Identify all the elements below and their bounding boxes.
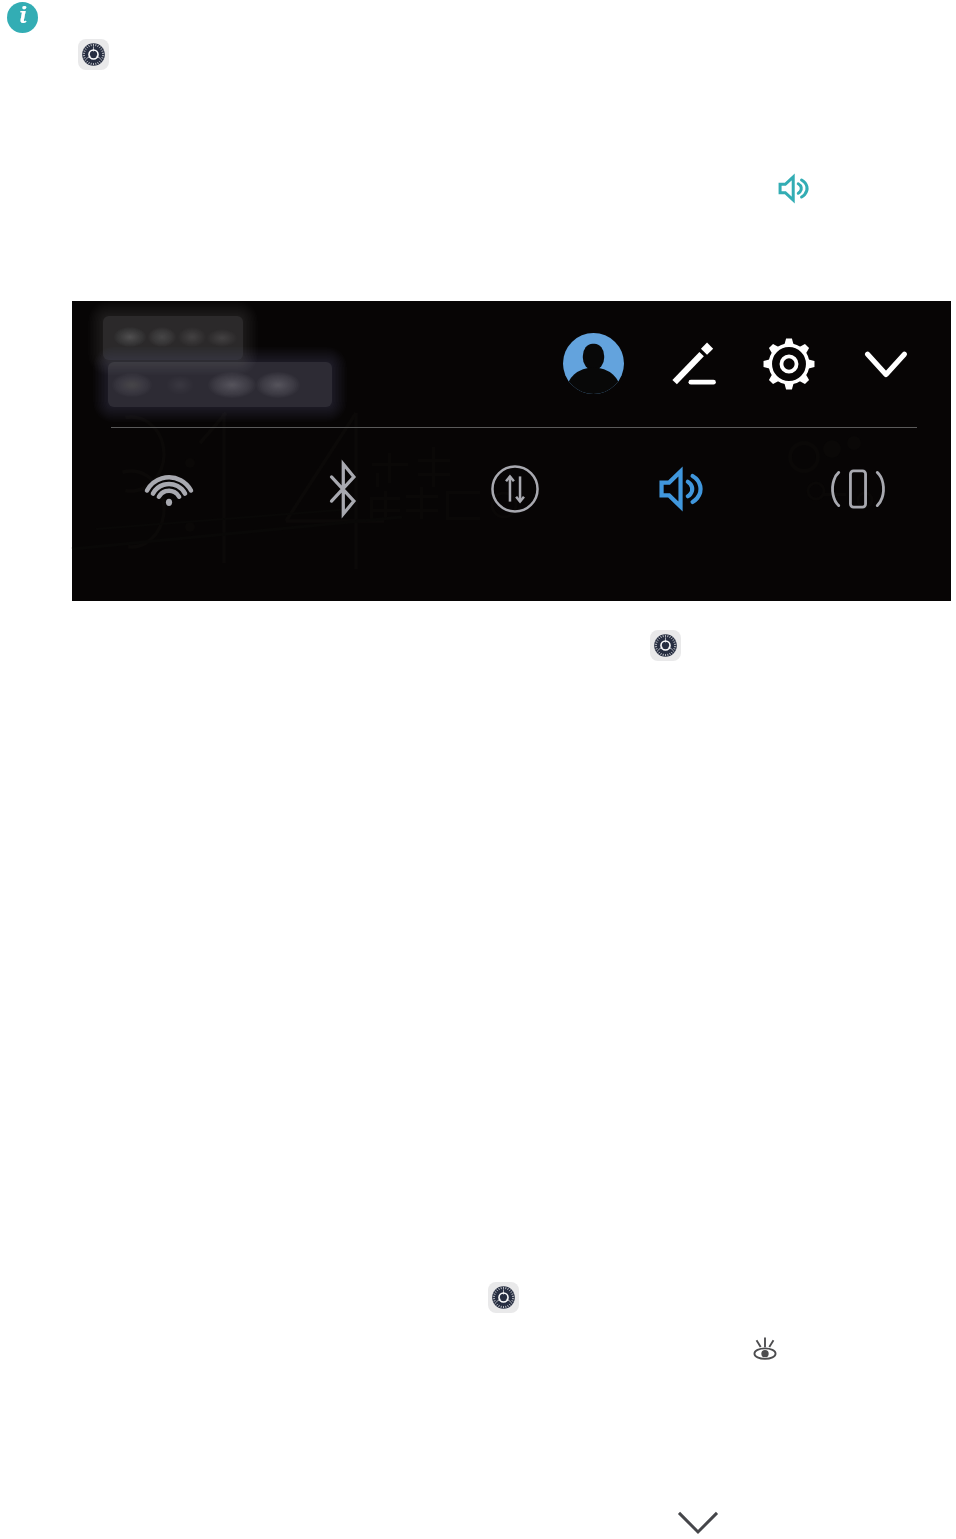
button[interactable]: Sound (660, 467, 712, 511)
button[interactable]: Collapse panel (863, 346, 909, 382)
button[interactable]: Edit (666, 339, 720, 393)
button[interactable]: Wi-Fi (141, 461, 197, 517)
button[interactable]: Information (7, 2, 38, 33)
button[interactable]: Vibrate (830, 461, 886, 517)
button[interactable]: Bluetooth (315, 461, 371, 517)
button[interactable]: Mobile data (487, 461, 543, 517)
button[interactable]: User profile (563, 333, 624, 394)
button[interactable]: Settings (761, 336, 817, 392)
button[interactable]: Eye comfort mode (749, 1330, 781, 1364)
staticText: i (19, 2, 27, 30)
button[interactable]: Sound (779, 174, 815, 203)
button[interactable]: Settings (488, 1282, 519, 1313)
button[interactable]: Settings (650, 630, 681, 661)
button[interactable]: Show more (673, 1507, 723, 1539)
button[interactable]: Settings (78, 39, 109, 70)
